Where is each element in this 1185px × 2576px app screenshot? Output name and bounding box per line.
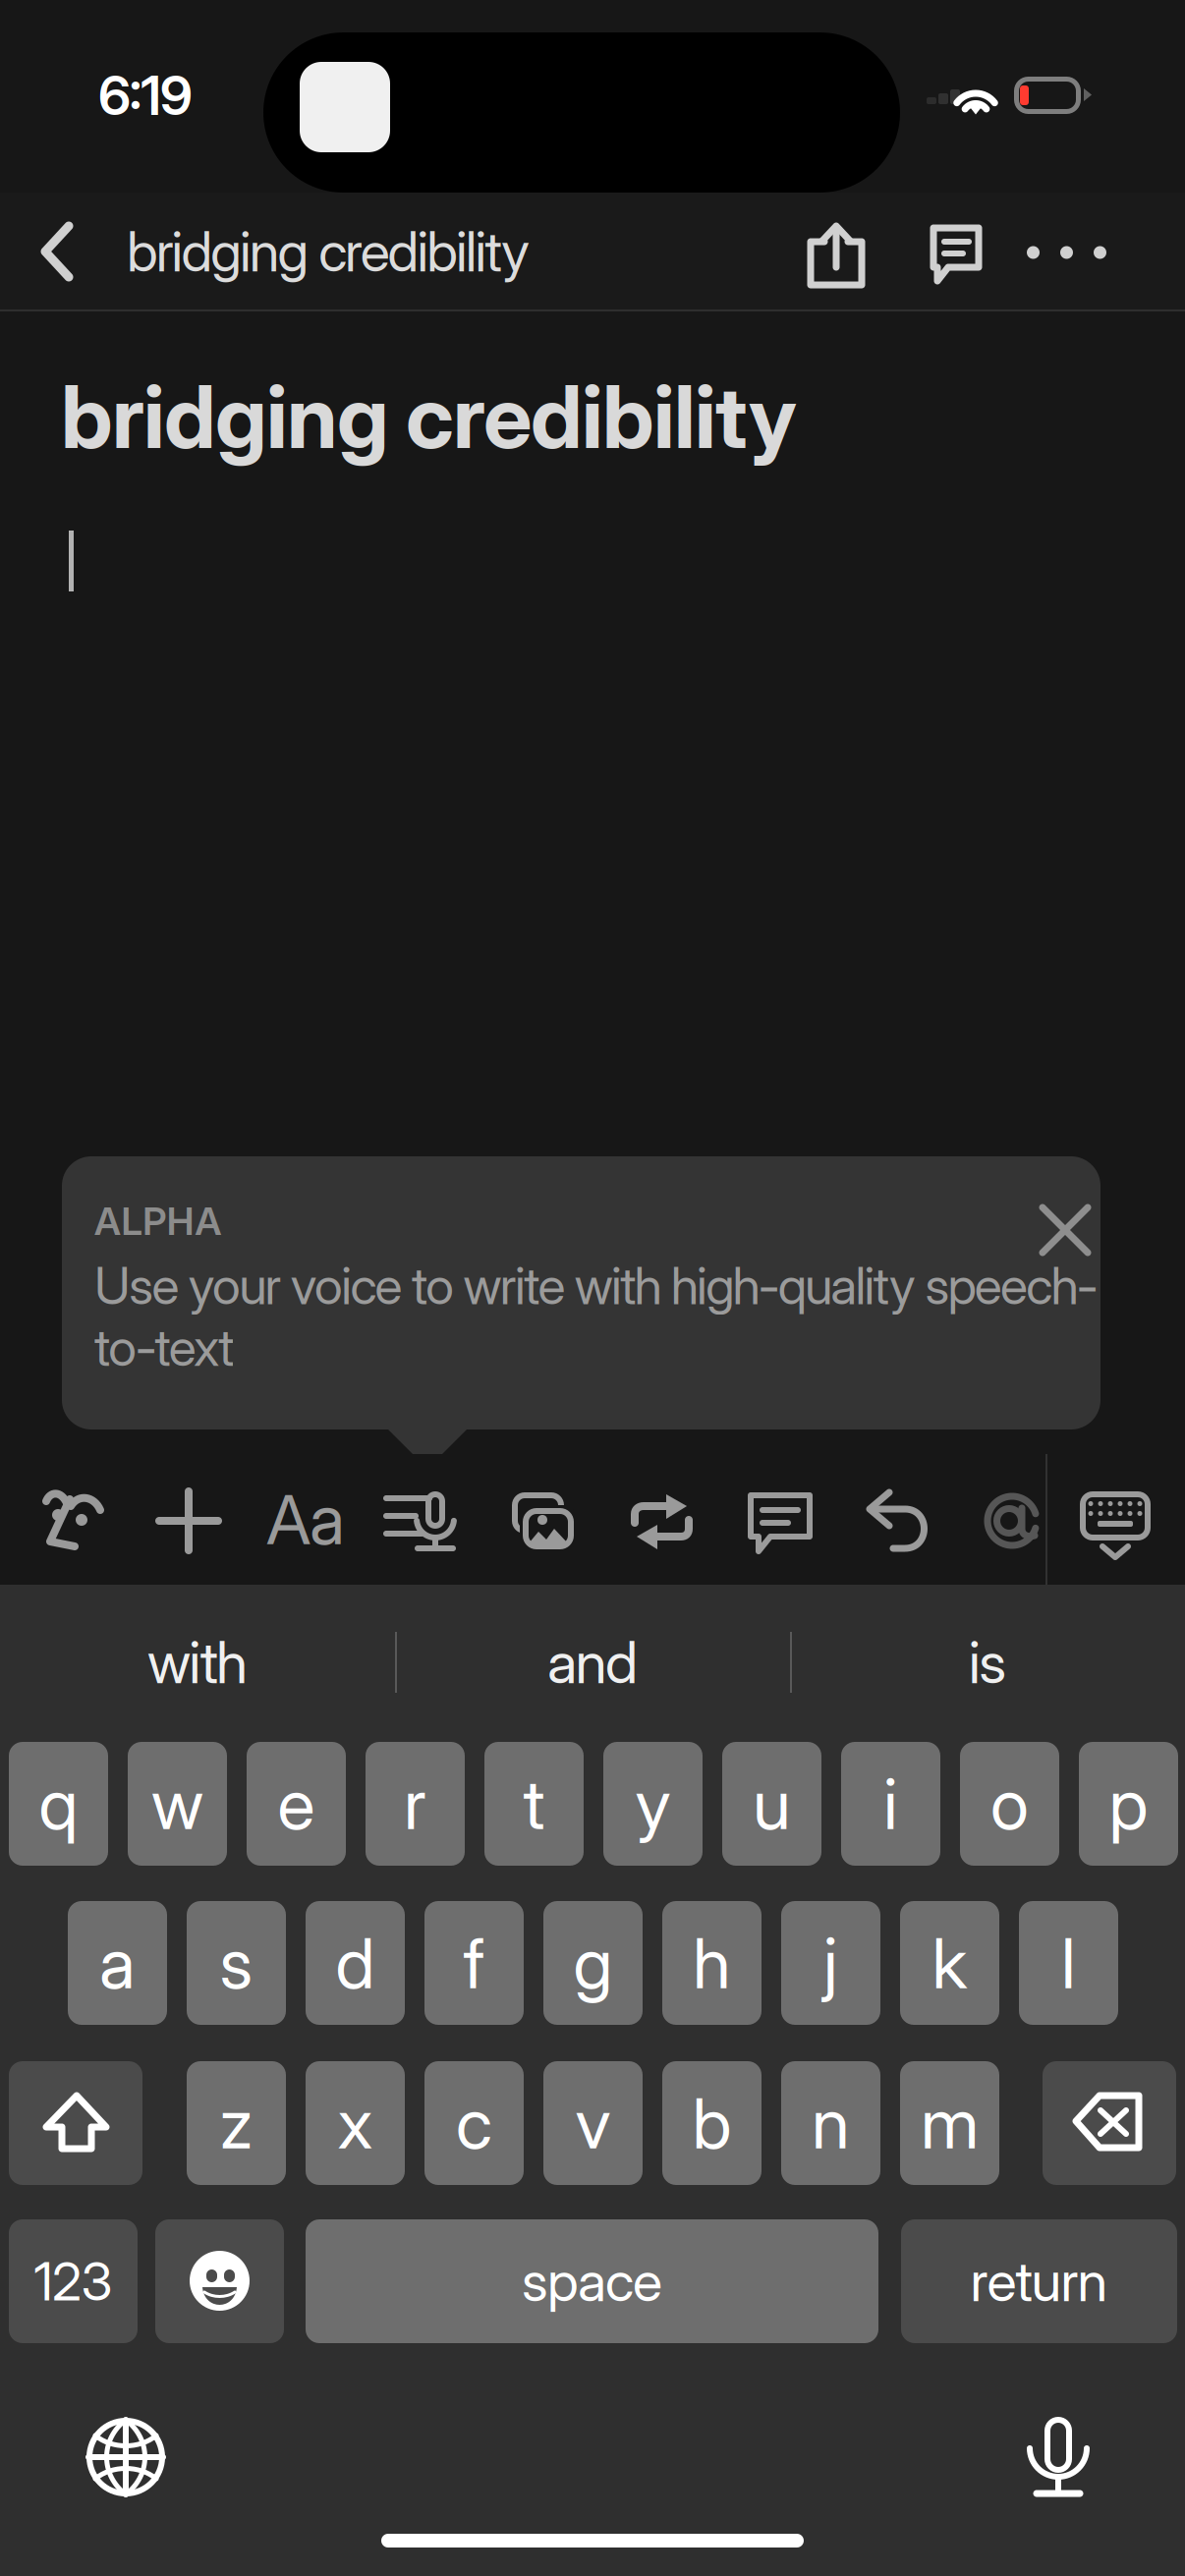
staticText: bridging credibility bbox=[61, 364, 797, 469]
staticText: u bbox=[753, 1762, 791, 1846]
staticText: with bbox=[147, 1627, 248, 1697]
staticText: return bbox=[970, 2248, 1108, 2315]
button[interactable]: Hide keyboard bbox=[0, 1454, 102, 1585]
button[interactable]: with bbox=[0, 1585, 395, 1740]
staticText: 6:19 bbox=[98, 63, 192, 128]
button[interactable]: and bbox=[0, 1585, 395, 1740]
staticText: ALPHA bbox=[94, 1198, 221, 1244]
staticText: Use your voice to write with high-qualit… bbox=[94, 1255, 1098, 1378]
button[interactable]: Draw bbox=[0, 1454, 102, 1585]
staticText: i bbox=[883, 1762, 898, 1846]
staticText: t bbox=[523, 1762, 545, 1846]
staticText: q bbox=[39, 1762, 78, 1846]
staticText: bridging credibility bbox=[127, 218, 530, 285]
button[interactable]: Share bbox=[0, 193, 92, 311]
staticText: o bbox=[990, 1762, 1029, 1846]
staticText: z bbox=[220, 2081, 253, 2165]
staticText: j bbox=[823, 1921, 838, 2005]
button[interactable]: Undo bbox=[0, 1454, 102, 1585]
button[interactable]: Text style bbox=[0, 1454, 102, 1585]
staticText: k bbox=[932, 1921, 967, 2005]
staticText: and bbox=[547, 1627, 638, 1697]
staticText: n bbox=[812, 2081, 850, 2165]
staticText: r bbox=[404, 1762, 426, 1846]
staticText: w bbox=[151, 1762, 203, 1846]
button[interactable]: is bbox=[0, 1585, 395, 1740]
staticText: Aa bbox=[266, 1478, 345, 1561]
staticText: e bbox=[278, 1762, 315, 1846]
button[interactable]: Comment bbox=[0, 1454, 102, 1585]
staticText: a bbox=[99, 1921, 136, 2005]
staticText: v bbox=[575, 2081, 611, 2165]
button[interactable]: Dismiss bbox=[62, 1156, 160, 1255]
staticText: is bbox=[969, 1627, 1006, 1697]
button[interactable]: Sync bbox=[0, 1454, 102, 1585]
staticText: l bbox=[1061, 1921, 1076, 2005]
staticText: h bbox=[693, 1921, 731, 2005]
staticText: c bbox=[456, 2081, 492, 2165]
button[interactable]: Back bbox=[0, 193, 102, 311]
button[interactable]: space bbox=[0, 1585, 573, 1708]
staticText: x bbox=[338, 2081, 373, 2165]
button[interactable]: Mention bbox=[0, 1454, 102, 1585]
button[interactable]: Dictate bbox=[0, 1454, 102, 1585]
button[interactable]: Photos bbox=[0, 1454, 102, 1585]
button[interactable]: Insert bbox=[0, 1454, 102, 1585]
staticText: p bbox=[1109, 1762, 1148, 1846]
staticText: 123 bbox=[34, 2250, 113, 2313]
staticText: space bbox=[522, 2248, 662, 2315]
staticText: s bbox=[220, 1921, 253, 2005]
staticText: f bbox=[463, 1921, 485, 2005]
staticText: y bbox=[635, 1762, 671, 1846]
staticText: m bbox=[921, 2081, 979, 2165]
staticText: b bbox=[692, 2081, 732, 2165]
staticText: d bbox=[336, 1921, 375, 2005]
staticText: g bbox=[573, 1921, 613, 2005]
button[interactable]: More bbox=[0, 193, 106, 311]
button[interactable]: Comments bbox=[0, 193, 92, 311]
button[interactable]: return bbox=[0, 1585, 276, 1708]
